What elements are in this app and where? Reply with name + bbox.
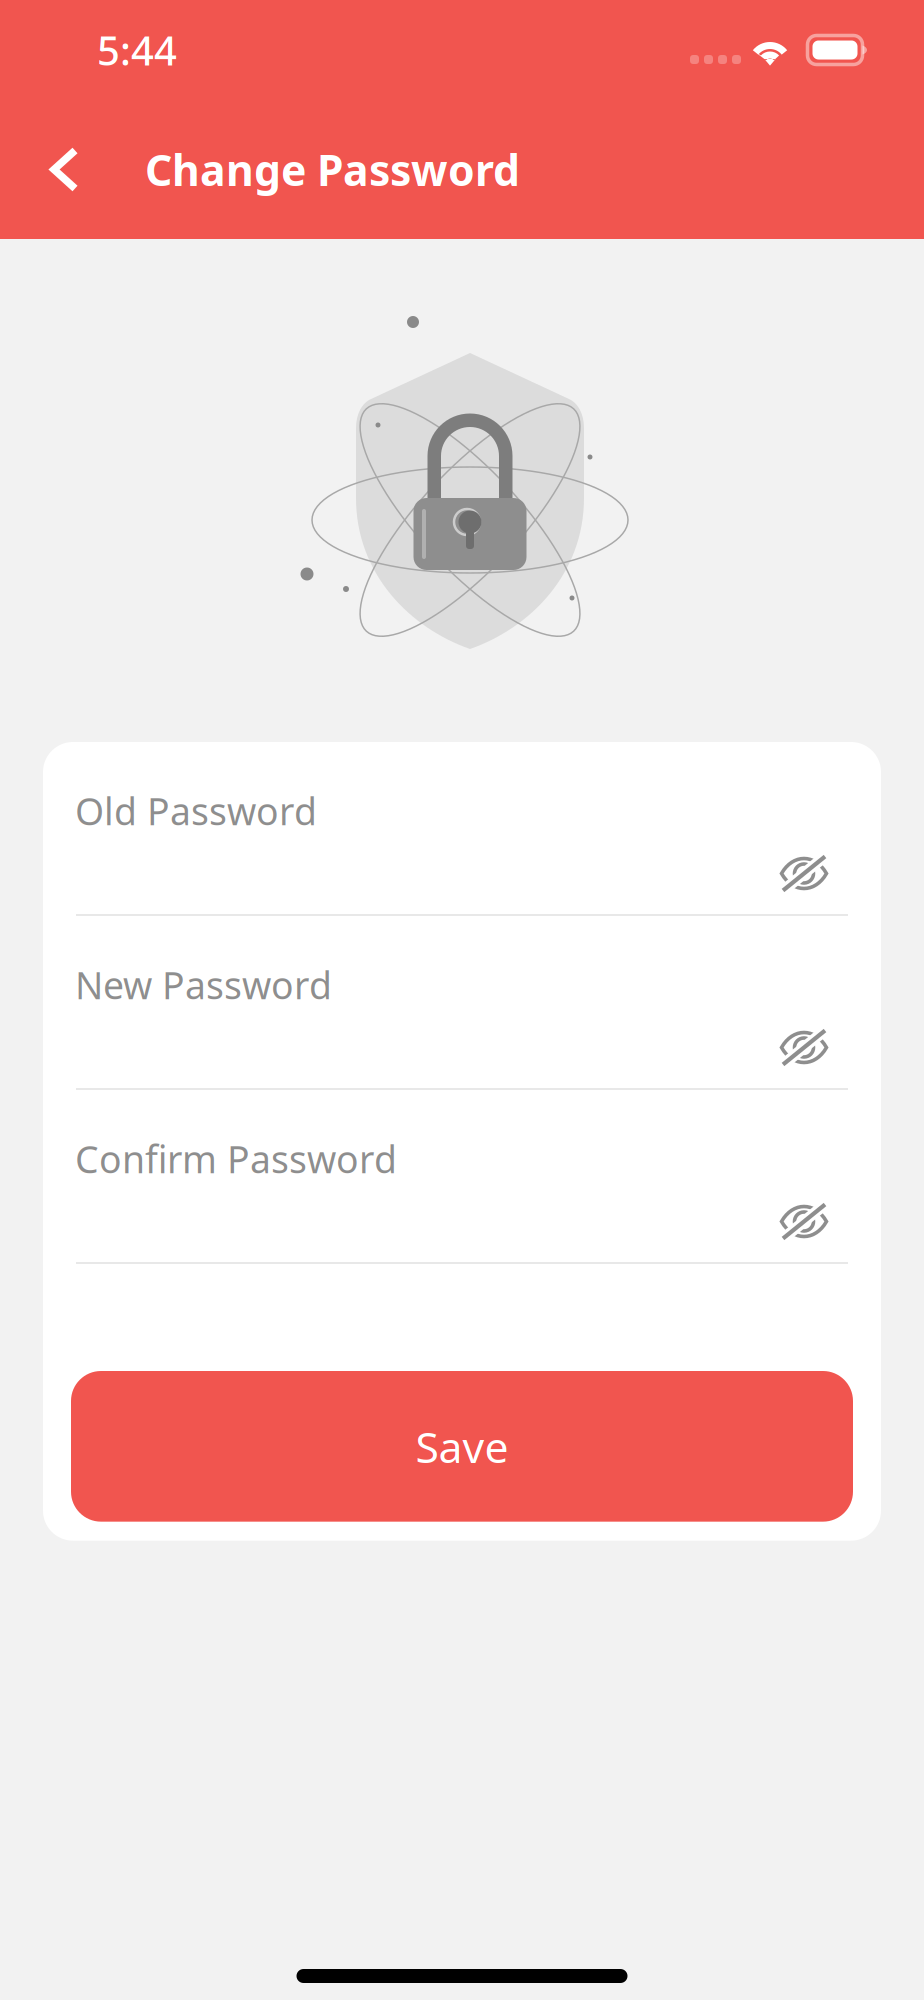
button[interactable]: Show New Password — [759, 1008, 853, 1087]
staticText: 5:44 — [97, 23, 177, 76]
staticText: Old Password — [75, 786, 317, 836]
button[interactable]: Back — [24, 118, 105, 220]
button[interactable]: Show Confirm Password — [759, 1182, 853, 1261]
button[interactable]: Show Old Password — [759, 834, 853, 913]
staticText: New Password — [75, 960, 332, 1010]
staticText: Confirm Password — [75, 1134, 397, 1184]
staticText: Save — [415, 1418, 508, 1475]
button[interactable]: Save — [71, 1371, 853, 1522]
staticText: Change Password — [145, 141, 520, 198]
